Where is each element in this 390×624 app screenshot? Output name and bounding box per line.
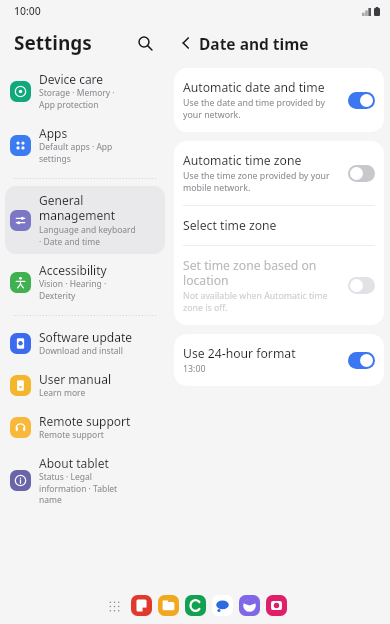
staticText: Language and keyboard · Date and time <box>39 224 136 248</box>
staticText: Storage · Memory · App protection <box>39 87 115 111</box>
staticText: User manual <box>39 371 111 387</box>
staticText: About tablet <box>39 455 109 471</box>
button[interactable]: Use 24-hour format <box>174 334 384 386</box>
button[interactable]: Internet <box>239 595 260 616</box>
button[interactable]: Toggle Use 24-hour format <box>348 352 375 369</box>
staticText: General management <box>39 192 115 224</box>
button[interactable]: My Files <box>158 595 179 616</box>
button[interactable]: Select time zone <box>174 206 384 245</box>
button[interactable]: Phone <box>185 595 206 616</box>
button[interactable]: Device care <box>5 65 165 117</box>
staticText: Device care <box>39 71 104 87</box>
staticText: Default apps · App settings <box>39 141 113 165</box>
staticText: Date and time <box>199 33 309 54</box>
staticText: Apps <box>39 125 68 141</box>
button[interactable]: All apps <box>104 596 124 616</box>
button[interactable]: Automatic date and time <box>174 68 384 132</box>
staticText: Learn more <box>39 387 86 399</box>
staticText: 13:00 <box>183 363 206 375</box>
staticText: Settings <box>14 30 92 56</box>
button[interactable]: Toggle Automatic time zone <box>348 165 375 182</box>
button[interactable]: Accessibility <box>5 256 165 308</box>
button[interactable]: Software update <box>5 323 165 363</box>
staticText: Status · Legal information · Tablet name <box>39 471 118 506</box>
button[interactable]: Toggle Set time zone based on location <box>348 277 375 294</box>
button[interactable]: Apps <box>5 119 165 171</box>
staticText: Vision · Hearing · Dexterity <box>39 278 107 302</box>
button[interactable]: Set time zone based on location <box>174 246 384 325</box>
button[interactable]: Camera <box>266 595 287 616</box>
button[interactable]: Search <box>130 28 160 58</box>
staticText: Use the time zone provided by your mobil… <box>183 170 330 194</box>
staticText: Remote support <box>39 413 131 429</box>
button[interactable]: User manual <box>5 365 165 405</box>
staticText: Automatic date and time <box>183 79 325 96</box>
staticText: Remote support <box>39 429 104 441</box>
staticText: Set time zone based on location <box>183 257 317 289</box>
button[interactable]: Automatic time zone <box>174 141 384 205</box>
button[interactable]: Notes <box>131 595 152 616</box>
button[interactable]: General management <box>5 186 165 254</box>
button[interactable]: Remote support <box>5 407 165 447</box>
button[interactable]: Toggle Automatic date and time <box>348 92 375 109</box>
button[interactable]: About tablet <box>5 449 165 512</box>
staticText: Select time zone <box>183 217 277 234</box>
staticText: Download and install <box>39 345 123 357</box>
staticText: Use 24-hour format <box>183 345 296 362</box>
staticText: Use the date and time provided by your n… <box>183 97 326 121</box>
button[interactable]: Messages <box>212 595 233 616</box>
staticText: Automatic time zone <box>183 152 302 169</box>
staticText: Software update <box>39 329 133 345</box>
staticText: Accessibility <box>39 262 107 278</box>
staticText: 10:00 <box>14 4 41 18</box>
staticText: Not available when Automatic time zone i… <box>183 290 328 314</box>
button[interactable]: Back <box>172 29 200 57</box>
